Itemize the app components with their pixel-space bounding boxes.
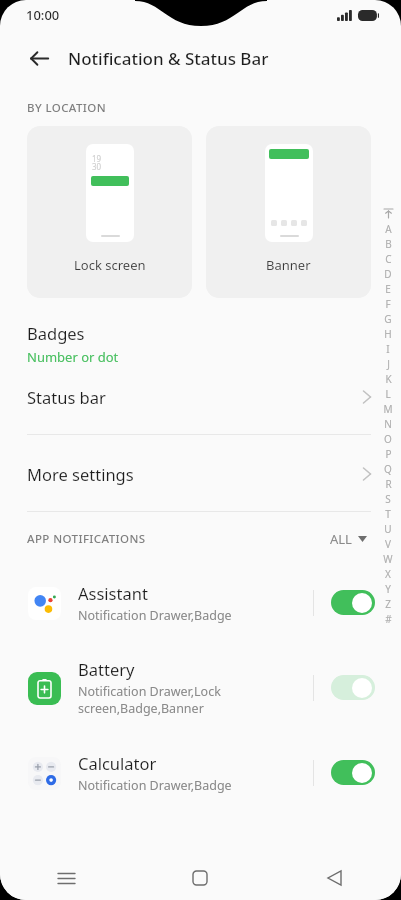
staticText: Notification & Status Bar bbox=[68, 47, 269, 70]
staticText: 10:00 bbox=[26, 6, 60, 24]
button[interactable]: G bbox=[377, 311, 399, 326]
button[interactable]: A bbox=[377, 221, 399, 236]
button[interactable]: Back bbox=[267, 856, 401, 900]
staticText: V bbox=[385, 537, 391, 551]
button[interactable]: F bbox=[377, 296, 399, 311]
staticText: Number or dot bbox=[27, 348, 119, 366]
button[interactable]: Assistant bbox=[0, 560, 401, 645]
button[interactable]: H bbox=[377, 326, 399, 341]
staticText: Y bbox=[385, 582, 391, 596]
staticText: APP NOTIFICATIONS bbox=[27, 531, 146, 547]
staticText: A bbox=[385, 222, 392, 236]
staticText: Notification Drawer,Badge bbox=[78, 607, 232, 624]
staticText: Notification Drawer,Lock screen,Badge,Ba… bbox=[78, 683, 221, 717]
button[interactable]: Toggle notifications bbox=[331, 675, 375, 700]
button[interactable]: Calculator bbox=[0, 730, 401, 815]
staticText: D bbox=[384, 267, 392, 281]
staticText: O bbox=[384, 432, 392, 446]
button[interactable]: M bbox=[377, 401, 399, 416]
button[interactable]: N bbox=[377, 416, 399, 431]
button[interactable]: L bbox=[377, 386, 399, 401]
button[interactable]: Toggle notifications bbox=[331, 760, 375, 785]
staticText: M bbox=[383, 402, 393, 416]
button[interactable]: Status bar bbox=[0, 380, 401, 414]
button[interactable]: Battery bbox=[0, 645, 401, 730]
button[interactable]: D bbox=[377, 266, 399, 281]
staticText: Assistant bbox=[78, 582, 148, 604]
button[interactable]: T bbox=[377, 506, 399, 521]
staticText: R bbox=[385, 477, 392, 491]
button[interactable]: R bbox=[377, 476, 399, 491]
staticText: # bbox=[385, 612, 392, 626]
button[interactable]: Y bbox=[377, 581, 399, 596]
button[interactable]: Z bbox=[377, 596, 399, 611]
button[interactable]: W bbox=[377, 551, 399, 566]
button[interactable]: C bbox=[377, 251, 399, 266]
button[interactable]: More settings bbox=[0, 457, 401, 491]
staticText: L bbox=[385, 387, 391, 401]
staticText: G bbox=[384, 312, 392, 326]
button[interactable]: U bbox=[377, 521, 399, 536]
button[interactable]: Banner bbox=[206, 126, 371, 298]
staticText: Battery bbox=[78, 658, 135, 680]
button[interactable]: Recent apps bbox=[0, 856, 133, 900]
button[interactable]: O bbox=[377, 431, 399, 446]
button[interactable]: Badges bbox=[0, 320, 401, 368]
button[interactable]: P bbox=[377, 446, 399, 461]
staticText: Q bbox=[384, 462, 392, 476]
staticText: More settings bbox=[27, 463, 134, 485]
staticText: N bbox=[384, 417, 392, 431]
staticText: Notification Drawer,Badge bbox=[78, 777, 232, 794]
staticText: X bbox=[385, 567, 391, 581]
staticText: B bbox=[385, 237, 392, 251]
staticText: U bbox=[384, 522, 392, 536]
button[interactable]: # bbox=[377, 611, 399, 626]
staticText: P bbox=[385, 447, 392, 461]
staticText: 19 30 bbox=[92, 153, 102, 172]
staticText: T bbox=[385, 507, 391, 521]
staticText: Badges bbox=[27, 322, 85, 344]
staticText: S bbox=[385, 492, 391, 506]
staticText: E bbox=[385, 282, 391, 296]
button[interactable]: S bbox=[377, 491, 399, 506]
button[interactable]: E bbox=[377, 281, 399, 296]
staticText: ALL bbox=[330, 530, 352, 548]
staticText: Banner bbox=[266, 256, 311, 274]
button[interactable]: Toggle notifications bbox=[331, 590, 375, 615]
staticText: K bbox=[385, 372, 392, 386]
staticText: H bbox=[384, 327, 392, 341]
staticText: Status bar bbox=[27, 386, 106, 408]
button[interactable]: J bbox=[377, 356, 399, 371]
staticText: Calculator bbox=[78, 752, 157, 774]
staticText: Z bbox=[385, 597, 391, 611]
staticText: BY LOCATION bbox=[27, 100, 107, 116]
staticText: Lock screen bbox=[74, 256, 146, 274]
button[interactable]: Q bbox=[377, 461, 399, 476]
button[interactable]: K bbox=[377, 371, 399, 386]
staticText: F bbox=[385, 297, 391, 311]
button[interactable]: ALL bbox=[326, 526, 371, 552]
staticText: I bbox=[386, 342, 390, 356]
staticText: J bbox=[387, 357, 390, 371]
button[interactable]: I bbox=[377, 341, 399, 356]
button[interactable]: Home bbox=[133, 856, 267, 900]
button[interactable]: 19 30 bbox=[27, 126, 192, 298]
staticText: W bbox=[383, 552, 393, 566]
staticText: C bbox=[385, 252, 392, 266]
button[interactable]: V bbox=[377, 536, 399, 551]
button[interactable]: B bbox=[377, 236, 399, 251]
button[interactable]: X bbox=[377, 566, 399, 581]
button[interactable]: Back bbox=[22, 41, 56, 75]
